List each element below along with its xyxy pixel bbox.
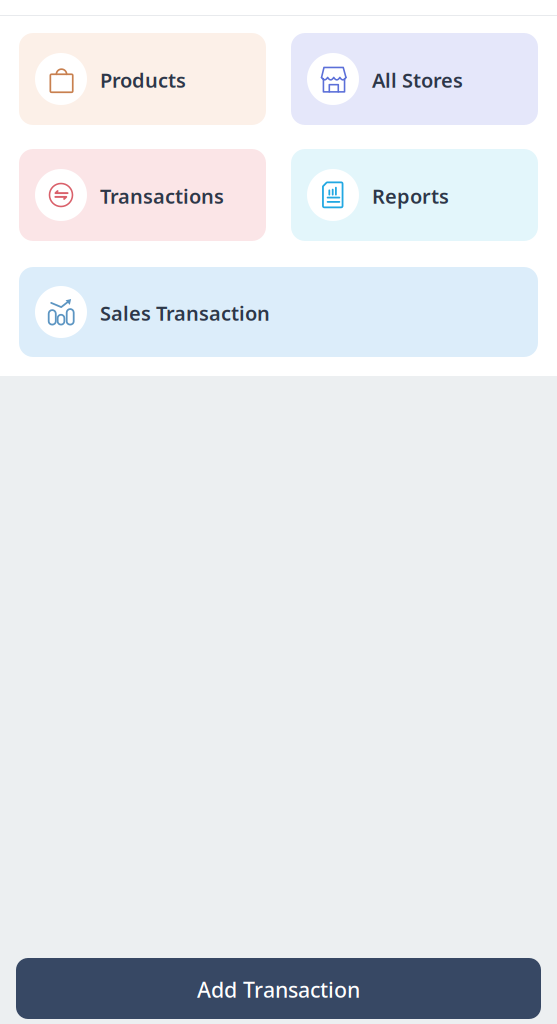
button[interactable]: Add Transaction <box>16 958 541 1019</box>
staticText: Transactions <box>100 183 224 209</box>
button[interactable]: Sales Transaction <box>19 267 538 357</box>
staticText: Products <box>100 67 186 93</box>
staticText: All Stores <box>372 67 463 93</box>
button[interactable]: All Stores <box>291 33 538 125</box>
button[interactable]: Transactions <box>19 149 266 241</box>
button[interactable]: Reports <box>291 149 538 241</box>
staticText: Sales Transaction <box>100 300 270 326</box>
staticText: Add Transaction <box>197 975 360 1004</box>
button[interactable]: Products <box>19 33 266 125</box>
staticText: Reports <box>372 183 449 209</box>
